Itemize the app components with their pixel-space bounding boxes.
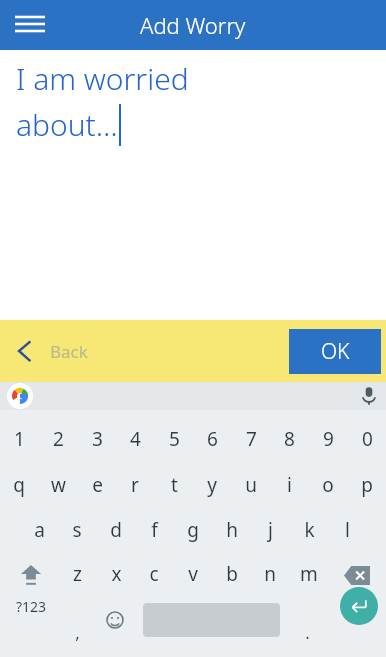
button[interactable]: l — [325, 516, 369, 544]
button[interactable]: j — [248, 516, 292, 544]
button[interactable]: 7 — [229, 425, 273, 453]
staticText: b — [226, 561, 238, 587]
button[interactable]: p — [345, 471, 386, 499]
button[interactable]: s — [55, 516, 99, 544]
button[interactable]: x — [94, 560, 138, 588]
button[interactable]: 6 — [190, 425, 234, 453]
staticText: d — [110, 517, 122, 543]
staticText: 8 — [284, 426, 295, 452]
button[interactable]: k — [287, 516, 331, 544]
button[interactable]: Voice input — [358, 385, 380, 407]
staticText: k — [304, 517, 315, 543]
staticText: h — [226, 517, 238, 543]
button[interactable]: 2 — [36, 425, 80, 453]
staticText: w — [51, 472, 66, 498]
staticText: 5 — [169, 426, 180, 452]
staticText: 2 — [53, 426, 64, 452]
button[interactable]: Backspace — [335, 556, 379, 594]
staticText: y — [207, 472, 217, 498]
button[interactable]: a — [17, 516, 61, 544]
staticText: . — [305, 621, 310, 644]
button[interactable]: r — [113, 471, 157, 499]
button[interactable]: n — [248, 560, 292, 588]
staticText: Add Worry — [140, 10, 246, 40]
button[interactable]: OK — [289, 329, 381, 374]
button[interactable]: 9 — [306, 425, 350, 453]
staticText: I am worried — [16, 58, 189, 99]
staticText: m — [300, 561, 318, 587]
button[interactable]: g — [171, 516, 215, 544]
staticText: p — [361, 472, 373, 498]
button[interactable]: 8 — [267, 425, 311, 453]
button[interactable]: Emoji — [100, 605, 130, 635]
button[interactable]: f — [132, 516, 176, 544]
staticText: 1 — [14, 426, 25, 452]
button[interactable]: b — [210, 560, 254, 588]
staticText: s — [72, 517, 82, 543]
button[interactable]: Shift — [9, 556, 53, 594]
button[interactable]: i — [267, 471, 311, 499]
staticText: 6 — [207, 426, 218, 452]
button[interactable]: h — [210, 516, 254, 544]
staticText: x — [111, 561, 122, 587]
staticText: j — [268, 517, 273, 543]
staticText: n — [264, 561, 276, 587]
button[interactable]: d — [94, 516, 138, 544]
button[interactable]: c — [132, 560, 176, 588]
button[interactable]: m — [287, 560, 331, 588]
button[interactable]: 0 — [345, 425, 386, 453]
staticText: Back — [50, 340, 88, 363]
button[interactable]: Open navigation menu — [8, 8, 52, 42]
staticText: g — [187, 517, 199, 543]
button[interactable]: ?123 — [5, 589, 57, 623]
button[interactable]: y — [190, 471, 234, 499]
staticText: 3 — [92, 426, 103, 452]
button[interactable]: t — [152, 471, 196, 499]
staticText: about… — [16, 104, 118, 145]
button[interactable]: 5 — [152, 425, 196, 453]
staticText: l — [345, 517, 350, 543]
staticText: 9 — [323, 426, 334, 452]
staticText: e — [92, 472, 103, 498]
staticText: z — [73, 561, 82, 587]
staticText: q — [13, 472, 25, 498]
staticText: o — [322, 472, 334, 498]
button[interactable]: Back — [10, 336, 88, 366]
button[interactable]: , — [55, 618, 99, 646]
button[interactable]: w — [36, 471, 80, 499]
button[interactable]: o — [306, 471, 350, 499]
staticText: c — [149, 561, 159, 587]
staticText: 7 — [246, 426, 257, 452]
button[interactable]: z — [55, 560, 99, 588]
staticText: 0 — [362, 426, 373, 452]
staticText: , — [75, 621, 80, 644]
staticText: r — [131, 472, 139, 498]
staticText: ?123 — [16, 597, 47, 616]
button[interactable]: u — [229, 471, 273, 499]
staticText: u — [245, 472, 257, 498]
staticText: a — [34, 517, 45, 543]
button[interactable]: 1 — [0, 425, 41, 453]
button[interactable]: e — [75, 471, 119, 499]
staticText: 4 — [130, 426, 141, 452]
button[interactable]: . — [285, 618, 329, 646]
button[interactable]: q — [0, 471, 41, 499]
button[interactable]: 3 — [75, 425, 119, 453]
staticText: OK — [321, 337, 350, 366]
staticText: f — [151, 517, 158, 543]
button[interactable]: v — [171, 560, 215, 588]
button[interactable]: 4 — [113, 425, 157, 453]
staticText: t — [171, 472, 178, 498]
button[interactable]: Google search — [7, 383, 33, 409]
staticText: i — [287, 472, 292, 498]
button[interactable]: Enter — [340, 587, 378, 625]
staticText: v — [188, 561, 198, 587]
